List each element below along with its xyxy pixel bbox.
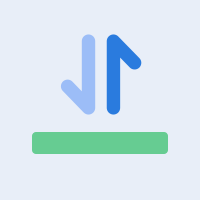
- button[interactable]: Sort order: [32, 132, 168, 154]
- button[interactable]: Sort: [61, 34, 141, 115]
